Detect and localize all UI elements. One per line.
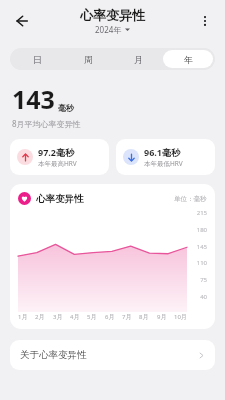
staticText: 143	[12, 82, 55, 116]
button[interactable]: Lowest HRV	[116, 139, 215, 175]
staticText: 6月	[105, 313, 115, 321]
staticText: 月	[134, 54, 143, 65]
staticText: 110	[196, 259, 207, 267]
staticText: 2024年	[95, 24, 122, 35]
staticText: 心率变异性	[80, 7, 145, 23]
staticText: 4月	[70, 313, 80, 321]
staticText: 本年最高HRV	[38, 159, 77, 168]
staticText: 180	[196, 226, 207, 234]
button[interactable]: 2024年	[95, 24, 130, 35]
staticText: 97.2毫秒	[38, 146, 74, 158]
button[interactable]: More options	[191, 7, 219, 35]
button[interactable]: Back	[6, 6, 36, 36]
button[interactable]: Highest HRV	[10, 139, 109, 175]
button[interactable]: 关于心率变异性	[10, 340, 215, 370]
staticText: 毫秒	[58, 103, 74, 113]
staticText: 1月	[18, 313, 28, 321]
staticText: 关于心率变异性	[20, 349, 87, 361]
staticText: 40	[200, 293, 207, 301]
staticText: 年	[184, 54, 193, 65]
staticText: 单位：毫秒	[174, 195, 207, 203]
staticText: 2月	[35, 313, 45, 321]
staticText: 215	[196, 209, 207, 217]
button[interactable]: 年	[163, 50, 213, 68]
staticText: 本年最低HRV	[144, 159, 183, 168]
button[interactable]: 周	[63, 50, 113, 68]
staticText: 8月平均心率变异性	[12, 118, 81, 129]
staticText: 5月	[87, 313, 97, 321]
staticText: 7月	[122, 313, 132, 321]
button[interactable]: 日	[12, 50, 63, 68]
staticText: 8月	[139, 313, 149, 321]
staticText: 心率变异性	[36, 193, 84, 205]
staticText: 145	[196, 243, 207, 251]
staticText: 10月	[174, 313, 187, 321]
staticText: 周	[84, 54, 93, 65]
staticText: 75	[200, 276, 207, 284]
staticText: 96.1毫秒	[144, 146, 180, 158]
button[interactable]: 月	[113, 50, 163, 68]
other: Highest HRV	[17, 149, 33, 165]
staticText: 日	[33, 54, 42, 65]
staticText: 3月	[53, 313, 63, 321]
staticText: 9月	[157, 313, 167, 321]
other: Lowest HRV	[123, 149, 139, 165]
